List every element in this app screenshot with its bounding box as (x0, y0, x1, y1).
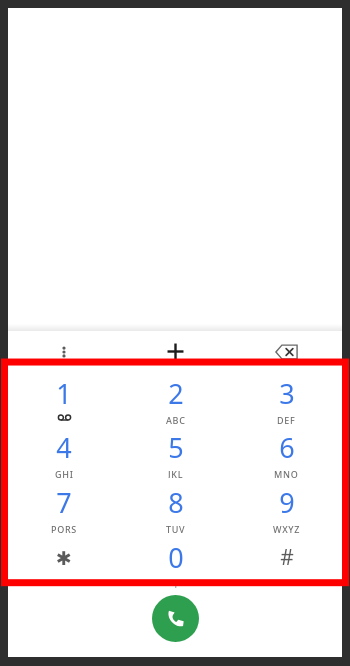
staticText: DEF (277, 414, 296, 424)
staticText: 5 (168, 429, 184, 466)
staticText: 8 (168, 484, 184, 521)
staticText: MNO (274, 468, 299, 478)
button[interactable]: More options (8, 331, 120, 372)
staticText: JKL (168, 468, 184, 478)
button[interactable]: Call (152, 595, 199, 642)
staticText: WXYZ (273, 523, 301, 533)
button[interactable]: Add (120, 331, 231, 372)
staticText: 9 (279, 484, 295, 521)
button[interactable]: 4 (8, 426, 120, 481)
staticText: + (173, 578, 179, 588)
staticText: 3 (279, 375, 295, 412)
button[interactable]: 3 (231, 372, 342, 426)
button[interactable]: Backspace (231, 331, 342, 372)
staticText: # (280, 543, 294, 572)
button[interactable]: 9 (231, 481, 342, 536)
staticText: 4 (56, 429, 72, 466)
staticText: ABC (166, 414, 186, 424)
staticText: 2 (168, 375, 184, 412)
button[interactable]: 1 (8, 372, 120, 426)
button[interactable]: 8 (120, 481, 231, 536)
staticText: 6 (279, 429, 295, 466)
button[interactable]: 5 (120, 426, 231, 481)
staticText: ✱ (56, 547, 72, 569)
button[interactable]: # (231, 536, 342, 591)
staticText: 1 (56, 375, 72, 412)
button[interactable]: ✱ (8, 536, 120, 591)
staticText: PQRS (51, 523, 77, 533)
staticText: 0 (168, 539, 184, 576)
button[interactable]: 6 (231, 426, 342, 481)
button[interactable]: 7 (8, 481, 120, 536)
staticText: 7 (56, 484, 72, 521)
button[interactable]: 2 (120, 372, 231, 426)
button[interactable]: 0 (120, 536, 231, 591)
staticText: GHI (55, 468, 74, 478)
staticText: TUV (166, 523, 186, 533)
